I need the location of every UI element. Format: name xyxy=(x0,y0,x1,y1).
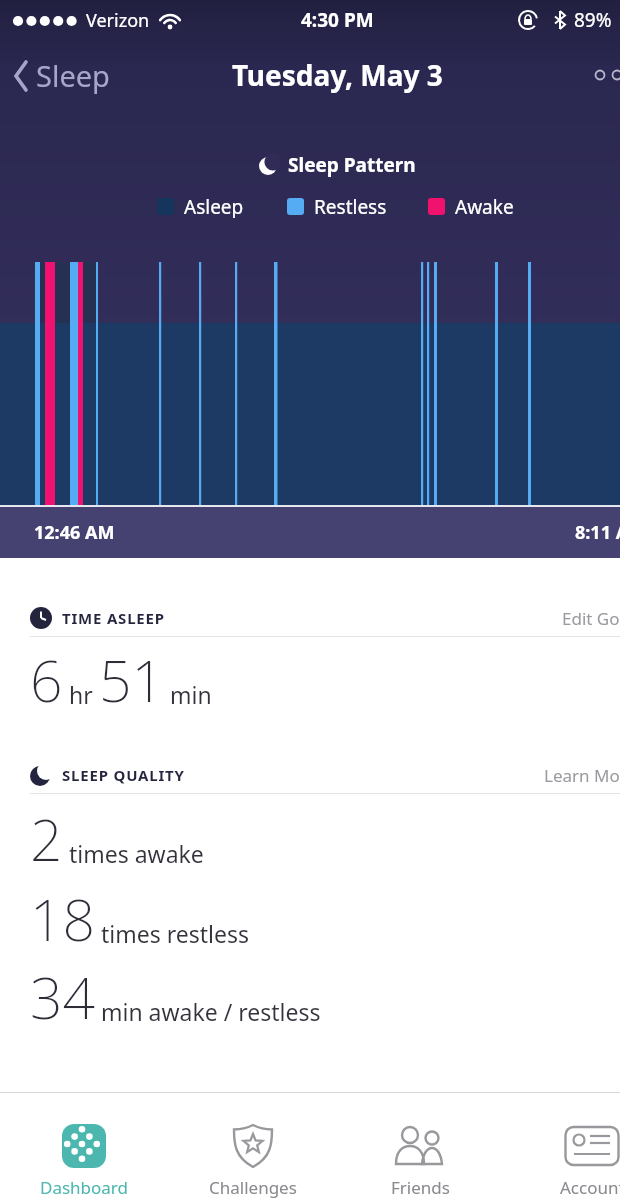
staticText: TIME ASLEEP xyxy=(62,608,165,628)
staticText: 34 xyxy=(30,958,95,1036)
staticText: 51 xyxy=(99,641,164,719)
staticText: Challenges xyxy=(209,1176,297,1199)
staticText: times awake xyxy=(63,838,204,869)
button[interactable]: Learn More xyxy=(544,764,620,787)
staticText: Sleep xyxy=(36,56,110,95)
staticText: 6 xyxy=(30,641,63,719)
staticText: Awake xyxy=(455,194,514,218)
staticText: 89% xyxy=(574,7,612,33)
staticText: 12:46 AM xyxy=(34,520,115,545)
button[interactable]: Dashboard xyxy=(24,1122,144,1199)
staticText: hr xyxy=(63,679,99,710)
staticText: SLEEP QUALITY xyxy=(62,765,185,785)
staticText: Dashboard xyxy=(40,1176,129,1199)
staticText: Friends xyxy=(391,1176,450,1199)
staticText: times restless xyxy=(95,918,249,949)
staticText: Tuesday, May 3 xyxy=(232,56,443,94)
button[interactable]: Edit Goal xyxy=(562,607,620,630)
button[interactable]: Sleep xyxy=(12,56,110,95)
staticText: Asleep xyxy=(184,194,244,218)
button[interactable]: Friends xyxy=(360,1122,480,1199)
staticText: 4:30 PM xyxy=(301,7,374,33)
staticText: Account xyxy=(560,1176,620,1199)
staticText: Restless xyxy=(314,194,387,218)
button[interactable]: Challenges xyxy=(193,1122,313,1199)
staticText: 18 xyxy=(30,880,95,958)
staticText: 8:11 AM xyxy=(575,520,620,545)
staticText: Sleep Pattern xyxy=(288,152,416,178)
staticText: 2 xyxy=(30,800,63,878)
staticText: Verizon xyxy=(86,8,150,33)
button[interactable]: Account xyxy=(532,1122,620,1199)
staticText: min awake / restless xyxy=(95,996,321,1027)
staticText: min xyxy=(164,679,212,710)
